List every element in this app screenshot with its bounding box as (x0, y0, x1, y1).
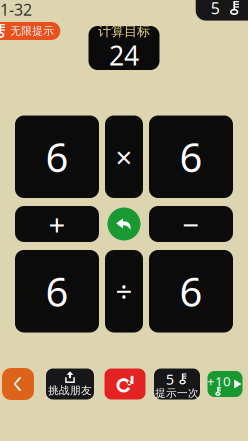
staticText: 24 (109, 37, 139, 73)
staticText: 1-32 (0, 0, 32, 20)
staticText: ÷ (115, 272, 132, 311)
button[interactable]: 6 (149, 250, 233, 332)
button[interactable]: Restart (104, 368, 145, 399)
button[interactable]: + (15, 206, 99, 242)
staticText: 6 (179, 265, 202, 318)
staticText: + (48, 204, 65, 243)
button[interactable]: × (105, 115, 143, 198)
staticText: 6 (45, 130, 68, 183)
staticText: × (115, 137, 132, 176)
button[interactable]: 挑战朋友 (46, 368, 94, 399)
button[interactable]: 无限提示 (0, 22, 60, 40)
button[interactable]: − (149, 206, 233, 242)
staticText: 无限提示 (10, 24, 54, 37)
staticText: 5 (166, 369, 174, 389)
button[interactable]: 6 (15, 250, 99, 332)
button[interactable]: ÷ (105, 250, 143, 332)
staticText: +10 (207, 372, 231, 390)
button[interactable]: 6 (149, 115, 233, 198)
button[interactable]: Watch ad for 10 keys (207, 371, 242, 397)
button[interactable]: 6 (15, 115, 99, 198)
staticText: 提示一次 (155, 387, 199, 400)
staticText: 计算目标 (98, 23, 150, 39)
staticText: − (182, 204, 199, 243)
button[interactable]: Back (2, 368, 34, 400)
staticText: 6 (179, 130, 202, 183)
staticText: 5 (211, 0, 220, 19)
button[interactable]: 5 (196, 0, 248, 21)
staticText: 6 (45, 265, 68, 318)
button[interactable]: Undo (105, 206, 143, 242)
staticText: 挑战朋友 (48, 384, 92, 397)
button[interactable]: 5 (154, 368, 200, 399)
